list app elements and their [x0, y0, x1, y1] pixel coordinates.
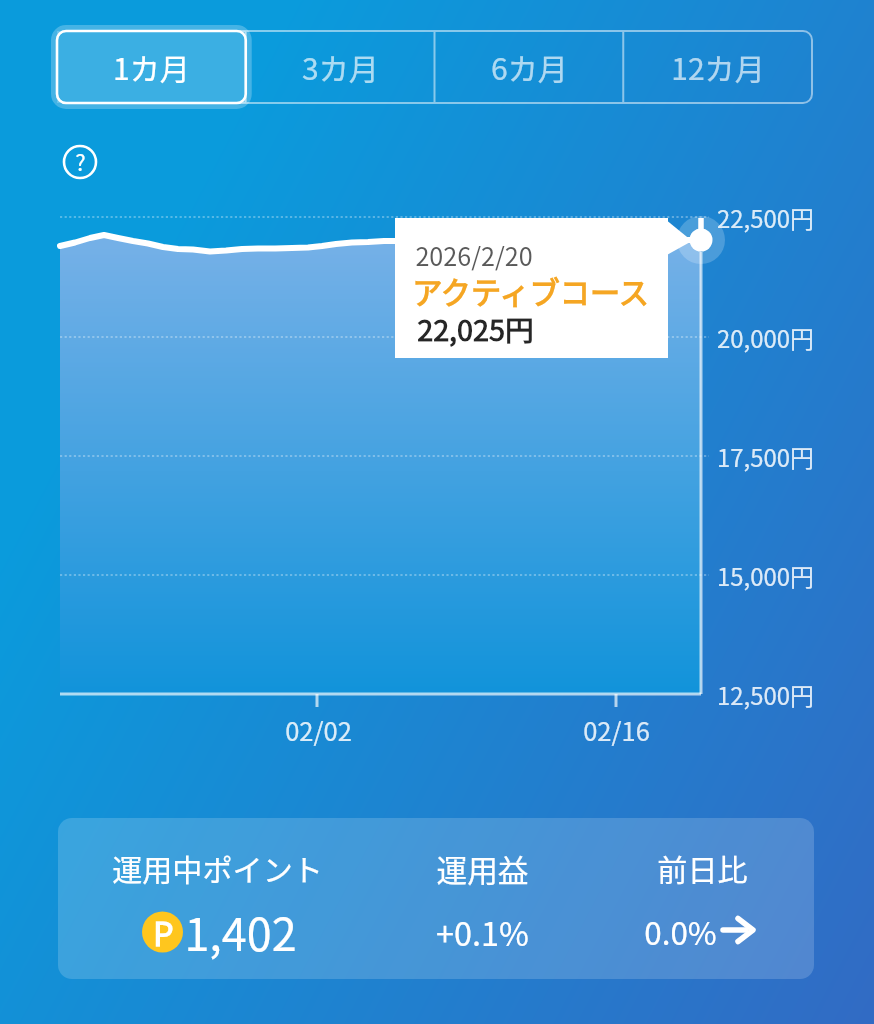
- staticText: 6カ月: [491, 45, 568, 89]
- staticText: 22,500円: [717, 200, 814, 235]
- button[interactable]: [395, 218, 668, 358]
- staticText: 0.0%: [644, 909, 717, 954]
- staticText: 02/16: [583, 711, 650, 748]
- staticText: 12カ月: [671, 45, 765, 89]
- staticText: 前日比: [657, 846, 748, 890]
- staticText: ?: [75, 145, 86, 177]
- staticText: 3カ月: [302, 45, 379, 89]
- staticText: 02/02: [285, 711, 352, 748]
- staticText: アクティブコース: [412, 269, 649, 313]
- button[interactable]: [624, 31, 812, 103]
- staticText: 1,402: [184, 899, 297, 964]
- staticText: P: [153, 909, 174, 955]
- staticText: 2026/2/20: [415, 237, 533, 273]
- staticText: 1カ月: [113, 45, 190, 89]
- button[interactable]: [246, 31, 435, 103]
- button[interactable]: Help: [62, 144, 98, 180]
- staticText: 22,025円: [417, 308, 534, 350]
- staticText: 運用中ポイント: [112, 846, 323, 890]
- button[interactable]: [435, 31, 624, 103]
- staticText: 15,000円: [717, 558, 814, 593]
- button[interactable]: [57, 31, 246, 103]
- staticText: +0.1%: [436, 908, 529, 955]
- button[interactable]: [58, 818, 814, 979]
- staticText: 17,500円: [717, 439, 814, 474]
- staticText: 12,500円: [717, 677, 814, 712]
- staticText: 20,000円: [717, 320, 814, 355]
- staticText: 運用益: [436, 846, 529, 890]
